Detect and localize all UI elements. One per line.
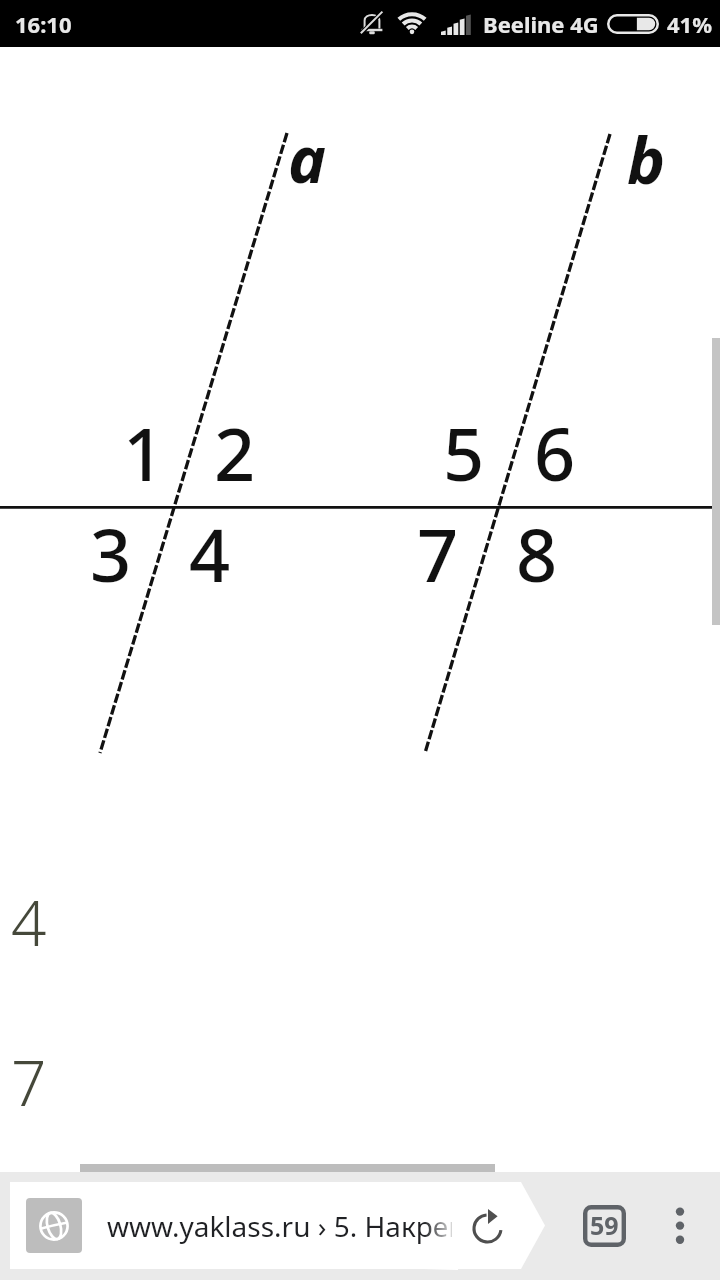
- staticText: 5: [443, 404, 485, 502]
- button[interactable]: Reload: [464, 1205, 511, 1252]
- staticText: 41%: [667, 9, 713, 39]
- staticText: 4: [189, 505, 231, 603]
- staticText: b: [627, 116, 666, 203]
- staticText: 16:10: [15, 9, 72, 39]
- staticText: 2: [214, 404, 256, 502]
- staticText: www.yaklass.ru › 5. Накрепление: [107, 1207, 452, 1245]
- staticText: 3: [90, 505, 132, 603]
- button[interactable]: Tabs: [578, 1200, 631, 1252]
- staticText: 7: [417, 505, 459, 603]
- staticText: 7: [11, 1040, 47, 1124]
- staticText: 1: [123, 404, 165, 502]
- staticText: 4: [11, 880, 47, 964]
- button[interactable]: Site info: [26, 1198, 82, 1253]
- staticText: a: [288, 115, 326, 202]
- staticText: Beeline 4G: [483, 9, 599, 39]
- staticText: 6: [534, 404, 576, 502]
- staticText: 59: [590, 1208, 619, 1242]
- staticText: 8: [516, 505, 558, 603]
- button[interactable]: More options: [660, 1190, 700, 1260]
